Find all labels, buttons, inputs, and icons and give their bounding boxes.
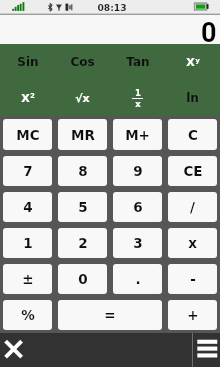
staticText: 9 (133, 163, 143, 179)
staticText: √x (75, 92, 90, 105)
button[interactable]: 4 (3, 192, 52, 222)
staticText: / (190, 199, 195, 215)
button[interactable]: √x (55, 80, 110, 116)
button[interactable]: ± (3, 264, 52, 294)
button[interactable]: 1 (3, 228, 52, 258)
button[interactable]: / (168, 192, 217, 222)
staticText: 08:13 (97, 2, 127, 13)
button[interactable]: X (0, 80, 55, 116)
staticText: . (135, 271, 141, 287)
staticText: + (187, 307, 199, 323)
staticText: x (188, 235, 197, 251)
button[interactable]: C (168, 119, 217, 150)
staticText: ln (186, 91, 199, 105)
button[interactable]: 8 (58, 156, 107, 186)
staticText: 1 (135, 88, 141, 98)
button[interactable]: Tan (110, 44, 165, 80)
button[interactable]: Sin (0, 44, 55, 80)
button[interactable]: M+ (113, 119, 162, 150)
button[interactable]: MC (3, 119, 52, 150)
button[interactable]: 5 (58, 192, 107, 222)
staticText: 5 (78, 199, 88, 215)
staticText: M+ (125, 127, 150, 143)
staticText: Sin (17, 55, 39, 69)
button[interactable]: ln (165, 80, 220, 116)
staticText: 8 (78, 163, 88, 179)
staticText: % (21, 307, 35, 323)
button[interactable]: 2 (58, 228, 107, 258)
button[interactable]: 1 (110, 80, 165, 116)
staticText: 6 (133, 199, 143, 215)
button[interactable]: Cos (55, 44, 110, 80)
staticText: 2 (30, 92, 35, 100)
button[interactable]: MR (58, 119, 107, 150)
staticText: MR (71, 127, 95, 143)
staticText: 3 (133, 235, 143, 251)
staticText: x (135, 99, 141, 109)
staticText: = (104, 307, 116, 323)
staticText: 0 (78, 271, 88, 287)
button[interactable]: X (165, 44, 220, 80)
staticText: - (190, 271, 196, 287)
staticText: Cos (70, 55, 95, 69)
button[interactable]: 7 (3, 156, 52, 186)
staticText: 0 (201, 17, 217, 44)
button[interactable]: - (168, 264, 217, 294)
staticText: Tan (126, 55, 150, 69)
button[interactable]: . (113, 264, 162, 294)
button[interactable]: 3 (113, 228, 162, 258)
button[interactable]: 6 (113, 192, 162, 222)
button[interactable]: + (168, 300, 217, 330)
button[interactable]: CE (168, 156, 217, 186)
staticText: ± (22, 271, 34, 287)
button[interactable]: % (3, 300, 52, 330)
staticText: y (195, 57, 200, 65)
staticText: X (21, 92, 30, 105)
staticText: 1 (23, 235, 33, 251)
button[interactable]: 9 (113, 156, 162, 186)
staticText: 7 (23, 163, 33, 179)
staticText: MC (16, 127, 40, 143)
staticText: 2 (78, 235, 88, 251)
staticText: 4 (23, 199, 33, 215)
staticText: CE (183, 163, 203, 179)
staticText: C (188, 127, 198, 143)
button[interactable]: Close (0, 333, 30, 367)
button[interactable]: x (168, 228, 217, 258)
button[interactable]: 0 (58, 264, 107, 294)
button[interactable]: Menu (193, 333, 220, 367)
staticText: X (186, 56, 195, 69)
button[interactable]: = (58, 300, 162, 330)
